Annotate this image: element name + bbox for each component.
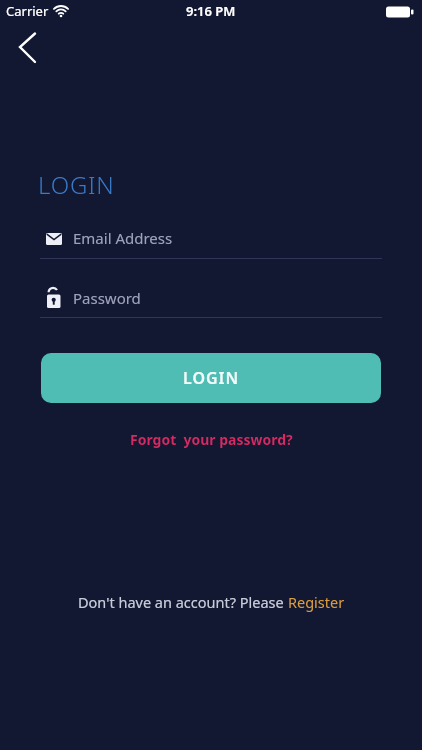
button[interactable]: Don't have an account? Please: [78, 592, 345, 612]
staticText: 9:16 PM: [186, 2, 236, 20]
staticText: Password: [73, 288, 141, 308]
button[interactable]: [8, 26, 48, 70]
staticText: Don't have an account? Please: [78, 592, 288, 612]
staticText: LOGIN: [183, 367, 240, 389]
staticText: Email Address: [73, 228, 173, 248]
button[interactable]: Password: [40, 282, 382, 318]
button[interactable]: LOGIN: [41, 353, 381, 403]
staticText: LOGIN: [38, 168, 115, 201]
staticText: Carrier: [6, 2, 49, 20]
button[interactable]: Email Address: [40, 222, 382, 259]
button[interactable]: Forgot your password?: [130, 430, 293, 449]
staticText: Register: [288, 592, 345, 612]
